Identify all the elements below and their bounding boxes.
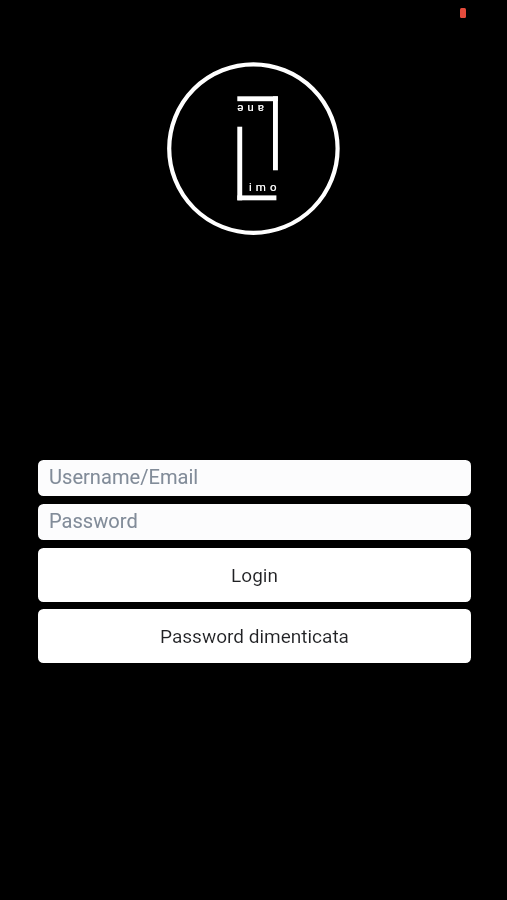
staticText: ane	[233, 103, 264, 116]
button[interactable]: Password dimenticata	[38, 609, 471, 663]
staticText: Login	[231, 564, 278, 586]
staticText: Username/Email	[49, 465, 199, 489]
staticText: Password dimenticata	[160, 625, 349, 647]
button[interactable]: Login	[38, 548, 471, 602]
button[interactable]: Password	[38, 504, 471, 540]
staticText: Password	[49, 509, 138, 533]
other: Notification	[460, 8, 466, 18]
staticText: imo	[249, 180, 281, 193]
other: Lane Limo logo	[0, 0, 507, 900]
button[interactable]: Username/Email	[38, 460, 471, 496]
